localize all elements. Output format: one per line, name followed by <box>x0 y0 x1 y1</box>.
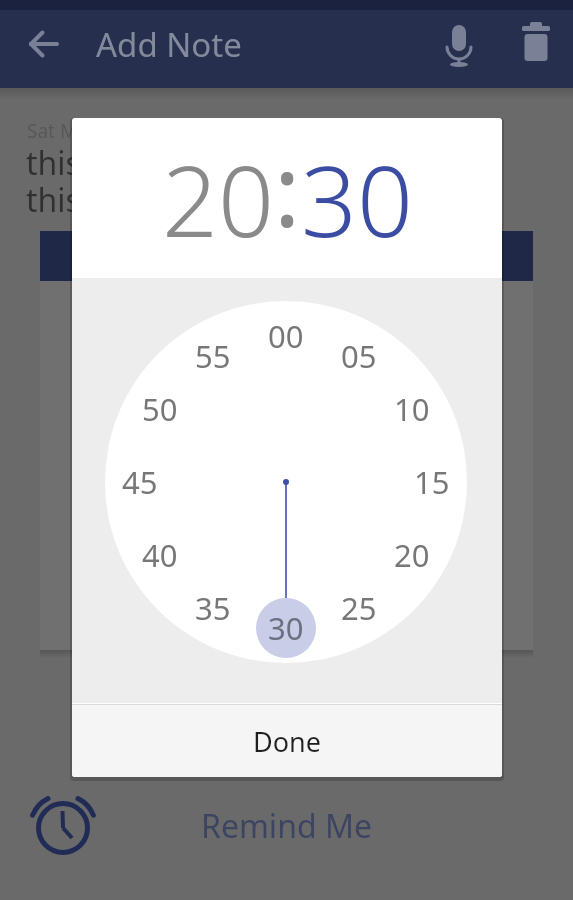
staticText: Done <box>253 723 321 760</box>
staticText: 30 <box>301 132 413 265</box>
staticText: 20 <box>394 534 430 576</box>
staticText: 10 <box>394 388 430 430</box>
button[interactable]: 30 <box>301 132 413 265</box>
staticText: 50 <box>142 388 178 430</box>
staticText: this is a note <box>26 178 217 222</box>
staticText: 15 <box>414 461 450 503</box>
staticText: Sat Mar 14, 2020 <box>27 118 176 144</box>
button[interactable] <box>20 20 68 68</box>
staticText: 25 <box>341 587 377 629</box>
staticText: Remind Me <box>201 804 372 848</box>
staticText: this is a note <box>26 141 217 185</box>
staticText: 05 <box>341 335 377 377</box>
button[interactable]: 20 <box>162 132 274 265</box>
staticText: Add Note <box>96 22 242 67</box>
staticText: 40 <box>142 534 178 576</box>
staticText: 45 <box>122 461 158 503</box>
staticText: 30 <box>268 607 304 649</box>
staticText: 55 <box>195 335 231 377</box>
staticText: 35 <box>195 587 231 629</box>
button[interactable]: 30 <box>256 598 316 658</box>
button[interactable] <box>435 21 483 69</box>
staticText: 20 <box>162 132 274 265</box>
staticText: : <box>274 122 301 255</box>
button[interactable]: Done <box>72 705 502 777</box>
button[interactable] <box>512 18 560 66</box>
button[interactable]: Remind Me <box>0 790 573 862</box>
staticText: 00 <box>268 315 304 357</box>
